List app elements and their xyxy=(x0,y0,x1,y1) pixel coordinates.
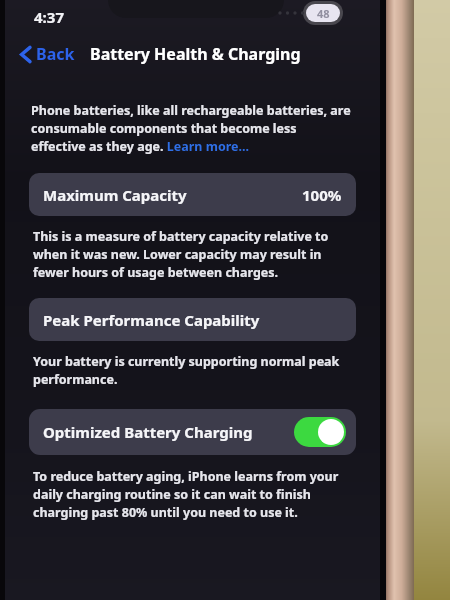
staticText: Battery Health & Charging xyxy=(90,43,301,65)
staticText: 4:37 xyxy=(34,7,64,27)
staticText: Peak Performance Capability xyxy=(43,310,260,330)
button[interactable]: Back xyxy=(14,38,79,70)
staticText: Your battery is currently supporting nor… xyxy=(33,353,352,388)
button[interactable]: Optimized Battery Charging xyxy=(29,409,356,455)
staticText: Optimized Battery Charging xyxy=(43,422,253,442)
staticText: Phone batteries, like all rechargeable b… xyxy=(31,102,354,155)
button[interactable]: Peak Performance Capability xyxy=(29,298,356,341)
button[interactable]: Optimized Battery Charging, on xyxy=(294,417,346,447)
staticText: 48 xyxy=(317,6,330,21)
staticText: Back xyxy=(36,43,75,65)
staticText: 100% xyxy=(302,185,342,205)
staticText: Maximum Capacity xyxy=(43,185,187,205)
button[interactable]: Maximum Capacity xyxy=(29,173,356,216)
staticText: This is a measure of battery capacity re… xyxy=(33,228,352,281)
staticText: To reduce battery aging, iPhone learns f… xyxy=(33,468,352,521)
